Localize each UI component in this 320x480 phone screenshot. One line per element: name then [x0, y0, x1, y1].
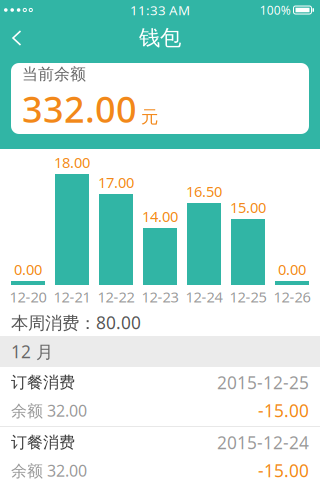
staticText: 钱包: [139, 25, 181, 51]
staticText: 12-21: [53, 287, 90, 306]
staticText: 12-22: [97, 287, 134, 306]
staticText: 12-26: [273, 287, 310, 306]
staticText: 12-20: [9, 287, 46, 306]
staticText: 当前余额: [22, 64, 86, 84]
staticText: 332.00: [22, 85, 137, 133]
staticText: 11:33 AM: [130, 1, 190, 19]
staticText: 12 月: [11, 340, 53, 363]
staticText: 15.00: [230, 197, 266, 217]
staticText: 2015-12-24: [217, 431, 309, 454]
staticText: -15.00: [258, 399, 309, 422]
button[interactable]: 订餐消费: [0, 427, 320, 480]
staticText: 16.50: [186, 181, 222, 201]
staticText: 17.00: [98, 172, 134, 192]
staticText: 订餐消费: [11, 433, 75, 452]
staticText: 14.00: [142, 206, 178, 226]
staticText: 余额 32.00: [11, 400, 87, 421]
staticText: 18.00: [54, 152, 90, 172]
staticText: 2015-12-25: [217, 371, 309, 394]
button[interactable]: 订餐消费: [0, 367, 320, 426]
staticText: 余额 32.00: [11, 460, 87, 480]
staticText: 本周消费：80.00: [11, 311, 141, 334]
staticText: 元: [141, 106, 158, 128]
staticText: 100%: [260, 2, 291, 18]
staticText: 12-24: [185, 287, 222, 306]
staticText: 12-25: [229, 287, 266, 306]
staticText: -15.00: [258, 459, 309, 480]
staticText: 12-23: [141, 287, 178, 306]
staticText: 0.00: [278, 259, 306, 279]
staticText: 订餐消费: [11, 373, 75, 392]
button[interactable]: [0, 20, 23, 56]
staticText: 0.00: [14, 259, 42, 279]
